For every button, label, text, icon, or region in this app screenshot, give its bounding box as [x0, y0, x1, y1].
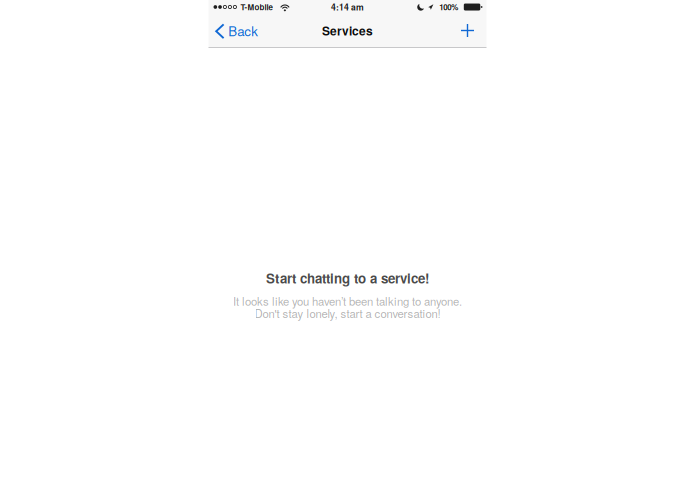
button[interactable]: Back: [208, 14, 267, 47]
staticText: Back: [228, 21, 258, 40]
staticText: Start chatting to a service!: [266, 269, 429, 288]
button[interactable]: New conversation: [449, 14, 486, 47]
staticText: Services: [322, 22, 373, 39]
staticText: It looks like you haven’t been talking t…: [233, 293, 462, 309]
staticText: 4:14 am: [331, 1, 364, 13]
staticText: Don't stay lonely, start a conversation!: [254, 305, 440, 321]
staticText: 100%: [439, 1, 458, 13]
staticText: T-Mobile: [240, 1, 272, 13]
